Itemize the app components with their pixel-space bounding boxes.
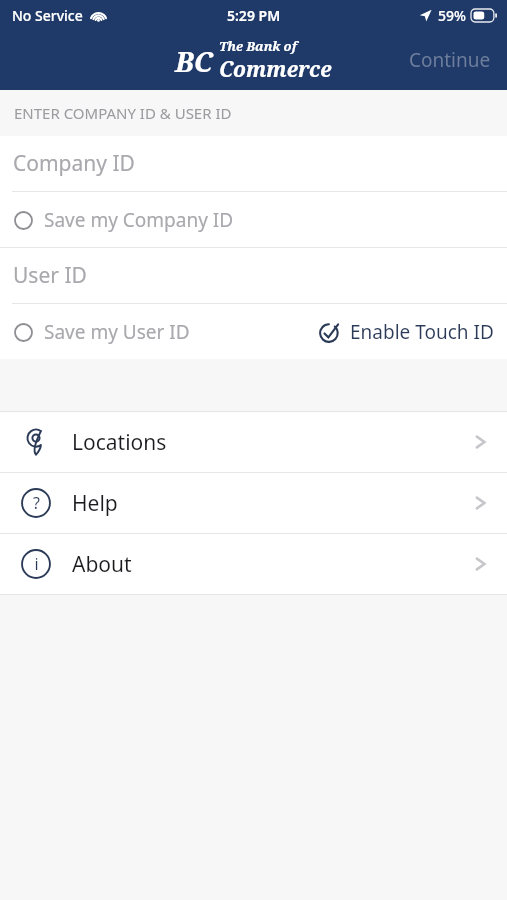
staticText: Continue bbox=[409, 47, 491, 73]
staticText: About bbox=[72, 550, 132, 579]
other: Open bbox=[469, 553, 491, 575]
staticText: User ID bbox=[13, 261, 87, 290]
staticText: No Service bbox=[12, 6, 83, 25]
staticText: Help bbox=[72, 489, 118, 518]
button[interactable]: Save my User ID bbox=[0, 311, 200, 353]
staticText: BC bbox=[175, 42, 213, 80]
staticText: ENTER COMPANY ID & USER ID bbox=[14, 103, 232, 123]
button[interactable]: User ID bbox=[0, 248, 507, 303]
button[interactable]: Enable Touch ID bbox=[309, 311, 507, 353]
button[interactable]: Continue bbox=[393, 37, 507, 83]
button[interactable]: i bbox=[0, 534, 507, 594]
staticText: Company ID bbox=[13, 149, 135, 178]
staticText: 59% bbox=[438, 6, 466, 25]
staticText: Commerce bbox=[219, 55, 332, 84]
button[interactable]: Save my Company ID bbox=[0, 199, 244, 241]
staticText: The Bank of bbox=[219, 37, 297, 55]
staticText: ? bbox=[33, 492, 40, 514]
button[interactable]: ? bbox=[0, 473, 507, 533]
button[interactable]: Company ID bbox=[0, 136, 507, 191]
other: Open bbox=[469, 431, 491, 453]
staticText: Enable Touch ID bbox=[350, 319, 494, 345]
staticText: 5:29 PM bbox=[227, 6, 281, 25]
button[interactable]: Locations bbox=[0, 412, 507, 472]
staticText: i bbox=[34, 553, 39, 575]
other: Open bbox=[469, 492, 491, 514]
staticText: Locations bbox=[72, 428, 167, 457]
staticText: Save my Company ID bbox=[44, 207, 234, 233]
staticText: Save my User ID bbox=[44, 319, 190, 345]
